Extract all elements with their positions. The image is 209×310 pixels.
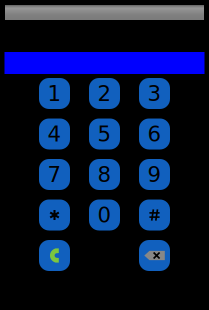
button[interactable]: 2: [89, 78, 120, 109]
staticText: 4: [47, 122, 61, 146]
staticText: 1: [47, 81, 61, 106]
button[interactable]: 7: [39, 159, 70, 190]
button[interactable]: Phone number: [4, 52, 204, 74]
button[interactable]: Star: [39, 199, 70, 230]
staticText: 0: [97, 203, 111, 227]
staticText: 7: [47, 162, 61, 187]
button[interactable]: 5: [89, 118, 120, 149]
button[interactable]: 6: [139, 118, 170, 149]
staticText: 6: [147, 122, 161, 146]
button[interactable]: Call: [39, 240, 70, 271]
button[interactable]: Pound: [139, 199, 170, 230]
staticText: 3: [147, 81, 161, 106]
button[interactable]: 0: [89, 199, 120, 230]
button[interactable]: 8: [89, 159, 120, 190]
button[interactable]: 1: [39, 78, 70, 109]
staticText: 2: [97, 81, 111, 106]
staticText: 5: [97, 122, 111, 146]
staticText: 9: [147, 162, 161, 187]
staticText: 8: [97, 162, 111, 187]
button[interactable]: 3: [139, 78, 170, 109]
button[interactable]: 9: [139, 159, 170, 190]
button[interactable]: Delete: [139, 240, 170, 271]
button[interactable]: 4: [39, 118, 70, 149]
